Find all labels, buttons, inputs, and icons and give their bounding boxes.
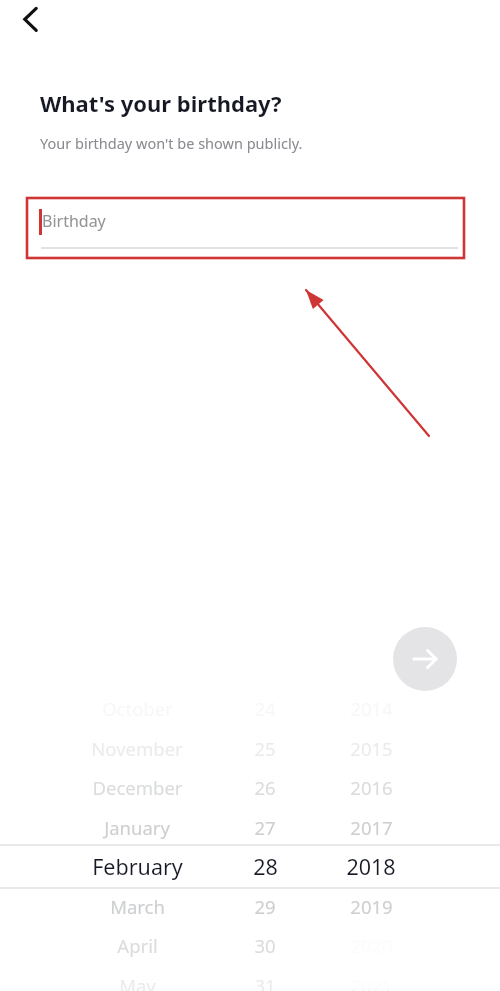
button[interactable]: 2015	[271, 732, 471, 764]
button[interactable]: 2016	[271, 771, 471, 803]
staticText: March	[110, 894, 165, 919]
staticText: 30	[254, 933, 276, 958]
staticText: January	[104, 815, 170, 840]
button[interactable]: Next	[393, 627, 457, 691]
staticText: Your birthday won't be shown publicly.	[40, 133, 303, 153]
button[interactable]: 28	[165, 850, 365, 882]
button[interactable]: 2017	[271, 811, 471, 843]
staticText: 2015	[350, 736, 393, 761]
button[interactable]: 30	[165, 929, 365, 961]
staticText: 26	[254, 775, 276, 800]
button[interactable]: 26	[165, 771, 365, 803]
staticText: 2018	[346, 852, 396, 881]
button[interactable]: April	[37, 929, 237, 961]
staticText: 2019	[350, 894, 393, 919]
staticText: December	[92, 775, 183, 800]
button[interactable]: December	[37, 771, 237, 803]
staticText: Birthday	[42, 210, 106, 232]
staticText: What's your birthday?	[40, 88, 282, 118]
button[interactable]: 2019	[271, 890, 471, 922]
button[interactable]: January	[37, 811, 237, 843]
button[interactable]: May	[37, 969, 237, 991]
staticText: November	[91, 736, 183, 761]
button[interactable]: 2018	[271, 850, 471, 882]
button[interactable]: Birthday	[28, 199, 464, 258]
staticText: February	[92, 852, 183, 881]
staticText: May	[119, 973, 156, 991]
staticText: 2016	[350, 775, 393, 800]
staticText: 25	[254, 736, 276, 761]
staticText: 31	[254, 973, 276, 991]
button[interactable]: 27	[165, 811, 365, 843]
button[interactable]: 29	[165, 890, 365, 922]
staticText: 27	[254, 815, 276, 840]
staticText: 28	[253, 852, 278, 881]
button[interactable]: Back	[8, 0, 52, 44]
button[interactable]: November	[37, 732, 237, 764]
button[interactable]: February	[37, 850, 237, 882]
staticText: 29	[254, 894, 276, 919]
staticText: 2017	[350, 815, 393, 840]
staticText: April	[117, 933, 158, 958]
button[interactable]: 25	[165, 732, 365, 764]
button[interactable]: March	[37, 890, 237, 922]
